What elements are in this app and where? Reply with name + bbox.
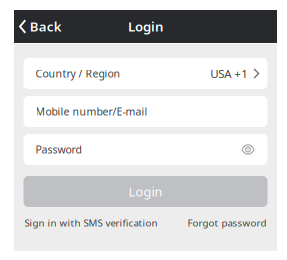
staticText: Country / Region	[35, 66, 120, 81]
staticText: Password	[35, 142, 81, 157]
button[interactable]: Back	[14, 10, 70, 43]
staticText: Login	[128, 183, 162, 200]
button[interactable]: Sign in with SMS verification	[24, 216, 157, 229]
button[interactable]: Login	[23, 176, 267, 207]
staticText: Forgot password	[187, 216, 266, 229]
staticText: Sign in with SMS verification	[24, 216, 157, 229]
button[interactable]: Forgot password	[187, 216, 266, 229]
staticText: Mobile number/E-mail	[35, 104, 147, 119]
staticText: USA +1	[210, 66, 248, 81]
staticText: Back	[30, 17, 62, 35]
button[interactable]: Country / Region	[23, 58, 267, 89]
staticText: Login	[128, 17, 163, 35]
button[interactable]: Show password	[236, 136, 259, 163]
